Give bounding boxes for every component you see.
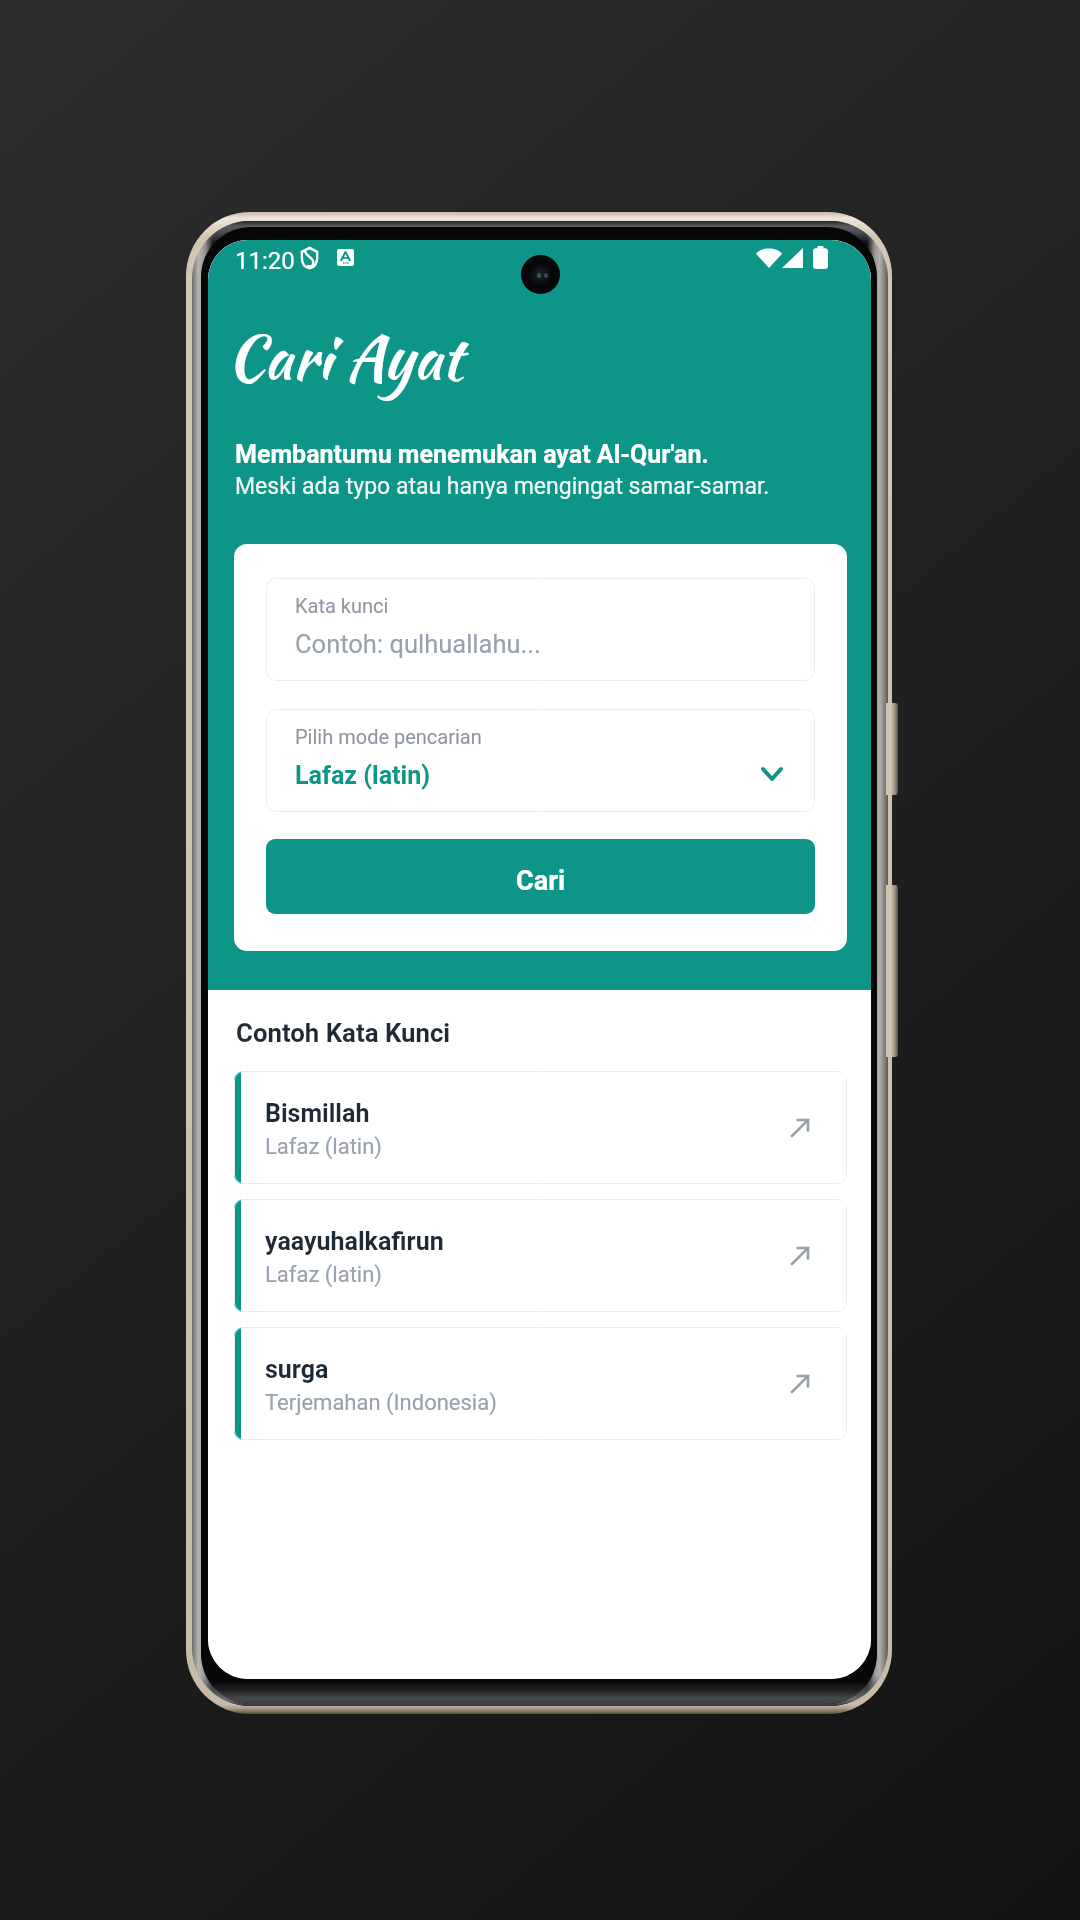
staticText: Bismillah [265, 1099, 370, 1128]
staticText: Lafaz (latin) [295, 761, 430, 790]
staticText: Pilih mode pencarian [295, 725, 482, 748]
button[interactable]: Kata kunci [266, 578, 815, 681]
staticText: Cari Ayat [227, 313, 463, 402]
staticText: Kata kunci [295, 594, 389, 617]
button[interactable]: Gunakan kata kunci Bismillah [784, 1112, 816, 1144]
staticText: yaayuhalkafirun [265, 1227, 444, 1256]
button[interactable]: yaayuhalkafirun [234, 1199, 847, 1312]
staticText: 11:20 [235, 247, 295, 275]
button[interactable]: Cari [266, 839, 815, 914]
staticText: Meski ada typo atau hanya mengingat sama… [235, 473, 770, 500]
staticText: Lafaz (latin) [265, 1134, 383, 1160]
button[interactable]: Bismillah [234, 1071, 847, 1184]
staticText: Contoh: qulhuallahu... [295, 629, 541, 659]
staticText: Lafaz (latin) [265, 1262, 383, 1288]
button[interactable]: Pilih mode pencarian [266, 709, 815, 812]
button[interactable]: surga [234, 1327, 847, 1440]
staticText: surga [265, 1355, 329, 1384]
staticText: Contoh Kata Kunci [236, 1018, 451, 1048]
staticText: Membantumu menemukan ayat Al-Qur'an. [235, 440, 709, 469]
staticText: Terjemahan (Indonesia) [265, 1390, 497, 1416]
button[interactable]: Gunakan kata kunci yaayuhalkafirun [784, 1240, 816, 1272]
button[interactable]: Gunakan kata kunci surga [784, 1368, 816, 1400]
staticText: Cari [516, 865, 566, 897]
